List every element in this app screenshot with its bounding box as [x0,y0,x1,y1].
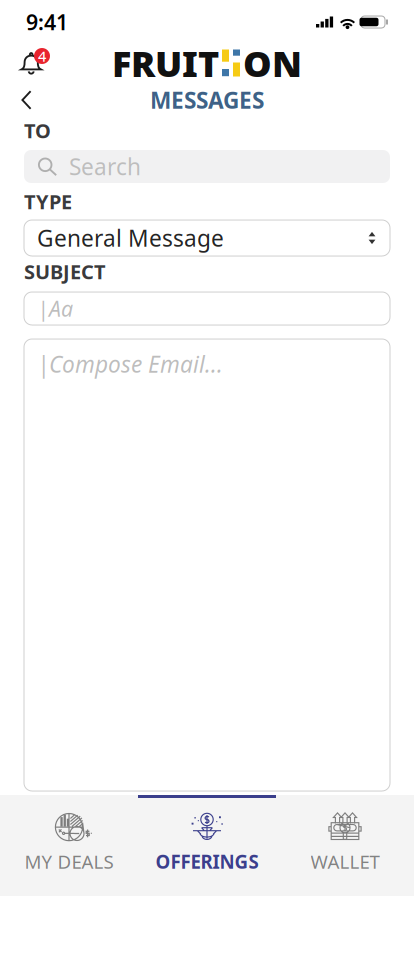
staticText: TO [24,117,51,144]
button[interactable]: |Aa [24,292,390,325]
staticText: 9:41 [26,8,68,36]
staticText: Search [69,151,141,181]
button[interactable]: Back [16,85,38,115]
staticText: |Aa [37,294,73,323]
staticText: General Message [37,223,224,253]
staticText: SUBJECT [24,258,106,285]
staticText: |Compose Email... [37,349,223,379]
staticText: MESSAGES [150,85,264,115]
button[interactable]: Search [24,150,390,183]
button[interactable]: OFFERINGS [138,795,276,896]
staticText: WALLET [310,849,379,874]
button[interactable]: |Compose Email... [24,339,390,791]
button[interactable]: General Message [24,220,390,256]
staticText: ON [243,39,302,87]
staticText: TYPE [24,188,72,215]
button[interactable]: MY DEALS [0,795,138,896]
button[interactable]: Notifications [17,49,47,77]
staticText: FRUIT [112,39,219,87]
staticText: OFFERINGS [155,849,258,874]
staticText: 4 [38,46,46,66]
staticText: MY DEALS [24,849,113,874]
button[interactable]: WALLET [276,795,414,896]
